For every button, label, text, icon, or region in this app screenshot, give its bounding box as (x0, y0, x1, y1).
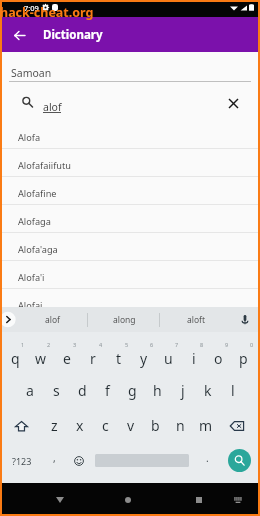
staticText: j (181, 381, 185, 400)
staticText: along (113, 314, 136, 326)
staticText: Alofa (18, 131, 41, 144)
staticText: 2 (47, 341, 51, 348)
staticText: z (51, 416, 58, 435)
button[interactable]: 5 (106, 338, 131, 373)
staticText: d (78, 381, 87, 400)
button[interactable]: alof (0, 82, 260, 121)
button[interactable]: Alofa'i (0, 261, 260, 289)
button[interactable] (92, 443, 192, 478)
staticText: c (102, 416, 109, 435)
button[interactable]: k (195, 373, 220, 408)
staticText: 0 (250, 341, 254, 348)
button[interactable]: 7 (156, 338, 181, 373)
staticText: h (153, 381, 162, 400)
staticText: aloft (187, 314, 206, 326)
staticText: q (11, 349, 20, 368)
staticText: o (214, 349, 223, 368)
button[interactable]: 0 (231, 338, 256, 373)
button[interactable]: ?123 (2, 443, 42, 478)
button[interactable]: Backspace (218, 408, 256, 443)
staticText: 7:09 (24, 3, 39, 13)
staticText: Alofafaiifutu (18, 159, 72, 172)
button[interactable]: alof (17, 307, 88, 332)
staticText: w (35, 349, 47, 368)
button[interactable]: d (69, 373, 95, 408)
button[interactable]: Search (222, 443, 256, 478)
staticText: Alofafine (18, 187, 57, 200)
button[interactable]: v (118, 408, 143, 443)
button[interactable]: 2 (28, 338, 54, 373)
button[interactable]: along (88, 307, 160, 332)
button[interactable]: 1 (2, 338, 28, 373)
staticText: hack-cheat.org (0, 4, 94, 21)
staticText: Alofa'aga (18, 243, 58, 256)
staticText: 6 (150, 341, 154, 348)
button[interactable]: . (192, 443, 222, 478)
button[interactable]: Alofafaiifutu (0, 149, 260, 177)
button[interactable]: 9 (206, 338, 231, 373)
button[interactable]: Emoji (66, 443, 92, 478)
button[interactable]: Recents (189, 490, 209, 510)
staticText: . (206, 451, 209, 465)
button[interactable]: Home (118, 490, 138, 510)
button[interactable]: f (95, 373, 120, 408)
staticText: alof (43, 100, 62, 114)
button[interactable]: x (67, 408, 93, 443)
staticText: r (90, 349, 96, 368)
button[interactable]: 8 (181, 338, 206, 373)
button[interactable]: , (42, 443, 66, 478)
staticText: 8 (200, 341, 204, 348)
button[interactable]: More suggestions (0, 311, 17, 328)
button[interactable]: Alofaga (0, 205, 260, 233)
staticText: Samoan (11, 66, 52, 80)
button[interactable]: Back (8, 24, 30, 46)
staticText: b (151, 416, 160, 435)
button[interactable]: 4 (80, 338, 106, 373)
staticText: Alofa'i (18, 271, 45, 284)
staticText: u (164, 349, 173, 368)
staticText: k (204, 381, 212, 400)
staticText: 1 (21, 341, 25, 348)
staticText: , (53, 451, 56, 465)
button[interactable]: a (17, 373, 43, 408)
button[interactable]: Alofai (0, 289, 260, 317)
button[interactable]: c (93, 408, 118, 443)
button[interactable]: aloft (160, 307, 232, 332)
staticText: Alofai (18, 299, 43, 312)
staticText: Dictionary (43, 27, 103, 43)
button[interactable]: Clear (224, 94, 242, 112)
button[interactable]: Samoan (0, 52, 260, 82)
button[interactable]: 6 (131, 338, 156, 373)
staticText: 9 (225, 341, 229, 348)
staticText: p (239, 349, 248, 368)
button[interactable]: Keyboard (230, 492, 246, 508)
staticText: Alofaga (18, 215, 51, 228)
staticText: y (140, 349, 148, 368)
staticText: s (53, 381, 60, 400)
button[interactable]: m (193, 408, 218, 443)
staticText: t (116, 349, 122, 368)
button[interactable]: n (168, 408, 193, 443)
button[interactable]: h (145, 373, 170, 408)
staticText: g (128, 381, 137, 400)
button[interactable]: g (120, 373, 145, 408)
button[interactable]: b (143, 408, 168, 443)
staticText: n (176, 416, 185, 435)
button[interactable]: Voice input (236, 311, 254, 329)
button[interactable]: Shift (2, 408, 41, 443)
button[interactable]: Alofa'aga (0, 233, 260, 261)
staticText: i (192, 349, 196, 368)
button[interactable]: s (43, 373, 69, 408)
button[interactable]: Alofafine (0, 177, 260, 205)
button[interactable]: z (41, 408, 67, 443)
button[interactable]: 3 (54, 338, 80, 373)
button[interactable]: j (170, 373, 195, 408)
button[interactable]: Back (50, 490, 70, 510)
staticText: 3 (73, 341, 77, 348)
staticText: 5 (125, 341, 129, 348)
button[interactable]: Alofa (0, 121, 260, 149)
staticText: a (26, 381, 34, 400)
staticText: 7 (175, 341, 179, 348)
button[interactable]: l (220, 373, 245, 408)
staticText: l (231, 381, 235, 400)
